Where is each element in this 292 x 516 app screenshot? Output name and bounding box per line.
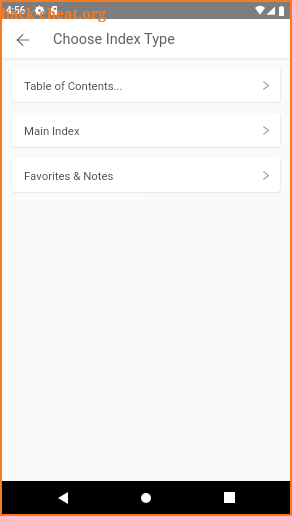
staticText: Main Index bbox=[24, 124, 80, 137]
button[interactable]: Recent apps bbox=[207, 481, 251, 514]
button[interactable]: Back bbox=[41, 481, 85, 514]
staticText: 4:56 bbox=[6, 5, 26, 17]
button[interactable]: Navigate up bbox=[2, 19, 41, 58]
button[interactable]: Home bbox=[124, 481, 168, 514]
staticText: hack-cheat.org bbox=[1, 4, 107, 23]
staticText: Table of Contents... bbox=[24, 79, 123, 92]
button[interactable]: Table of Contents... bbox=[12, 68, 280, 102]
button[interactable]: Favorites & Notes bbox=[12, 158, 280, 192]
staticText: Choose Index Type bbox=[53, 31, 175, 48]
staticText: Favorites & Notes bbox=[24, 169, 114, 182]
button[interactable]: Main Index bbox=[12, 113, 280, 147]
